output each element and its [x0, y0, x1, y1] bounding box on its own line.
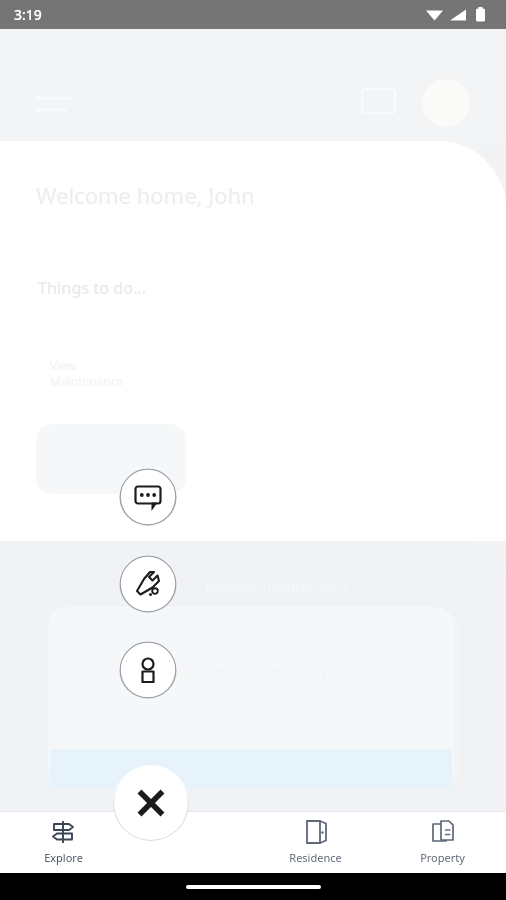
button[interactable]: Messages	[119, 468, 177, 526]
staticText: 3:19	[14, 5, 42, 24]
button[interactable]: Contact manager	[119, 641, 177, 699]
staticText: Things to do...	[38, 277, 147, 299]
button[interactable]: Explore	[0, 811, 126, 873]
button[interactable]: Residence	[252, 811, 379, 873]
staticText: Property	[420, 850, 465, 865]
staticText: Residence	[289, 850, 342, 865]
button[interactable]: Request maintenance	[119, 555, 177, 613]
button[interactable]: Close menu	[113, 765, 189, 841]
button[interactable]: Property	[379, 811, 506, 873]
staticText: View Maintenance	[50, 357, 124, 389]
staticText: Explore	[44, 850, 83, 865]
staticText: Welcome home, John	[36, 180, 255, 210]
